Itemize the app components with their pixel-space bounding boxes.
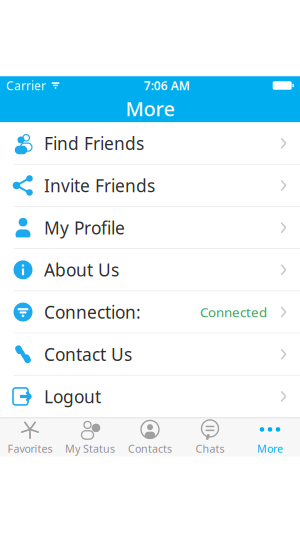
staticText: Contact Us <box>44 343 132 366</box>
staticText: Invite Friends <box>44 174 155 197</box>
button[interactable]: My Profile <box>0 207 300 249</box>
staticText: About Us <box>44 258 119 281</box>
staticText: More <box>257 441 283 456</box>
staticText: My Profile <box>44 216 125 239</box>
staticText: Find Friends <box>44 132 144 155</box>
button[interactable]: About Us <box>0 249 300 291</box>
button[interactable]: Favorites <box>0 418 60 456</box>
button[interactable]: Logout <box>0 376 300 418</box>
staticText: More <box>125 95 174 122</box>
button[interactable]: Contact Us <box>0 333 300 376</box>
staticText: 7:06 AM <box>144 77 190 93</box>
staticText: Carrier <box>6 77 46 93</box>
staticText: Logout <box>44 385 101 408</box>
button[interactable]: Invite Friends <box>0 165 300 207</box>
staticText: Connected <box>200 303 267 321</box>
staticText: Connection: <box>44 300 141 323</box>
button[interactable]: Chats <box>180 418 240 456</box>
staticText: Contacts <box>128 441 172 456</box>
button[interactable]: Contacts <box>120 418 180 456</box>
staticText: Chats <box>195 441 224 456</box>
button[interactable]: Find Friends <box>0 122 300 165</box>
staticText: My Status <box>65 441 115 456</box>
staticText: Favorites <box>7 441 52 456</box>
button[interactable]: My Status <box>60 418 120 456</box>
button[interactable]: Connection: <box>0 291 300 333</box>
button[interactable]: More <box>240 418 300 456</box>
